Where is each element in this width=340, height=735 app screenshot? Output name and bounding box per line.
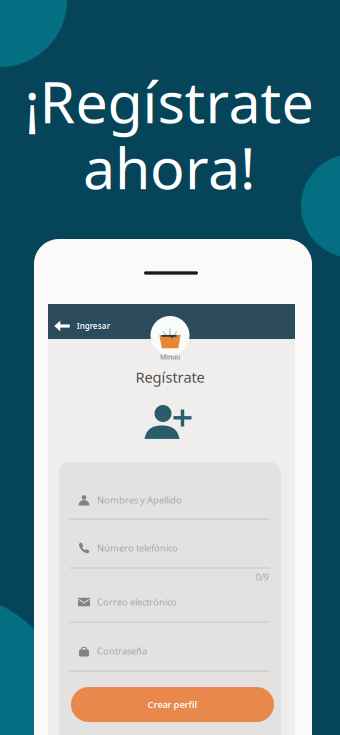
staticText: 0/9: [255, 571, 268, 583]
staticText: ahora!: [83, 129, 255, 205]
staticText: Contraseña: [97, 645, 147, 657]
staticText: Regístrate: [135, 367, 204, 387]
staticText: Minuu: [160, 353, 180, 361]
staticText: Ingresar: [77, 321, 110, 331]
staticText: Correo electrónico: [97, 596, 177, 608]
button[interactable]: Crear perfil: [71, 687, 274, 722]
staticText: Nombres y Apellido: [97, 494, 182, 506]
staticText: Crear perfil: [147, 698, 197, 711]
staticText: ¡Regístrate: [24, 63, 313, 139]
button[interactable]: Ingresar: [47, 313, 117, 338]
staticText: Número telefónico: [97, 542, 178, 554]
